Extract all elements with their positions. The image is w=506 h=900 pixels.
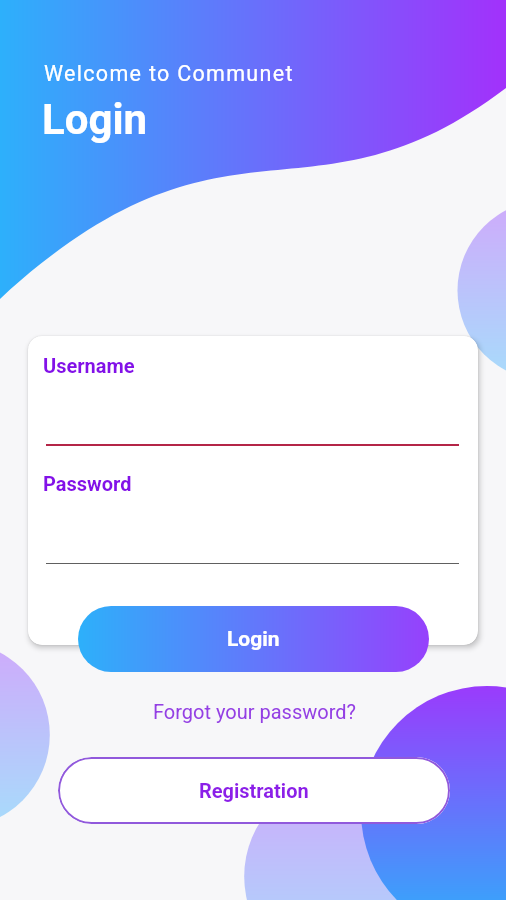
staticText: Login [42, 95, 148, 144]
button[interactable]: Registration [58, 757, 450, 824]
button[interactable]: Forgot your password? [142, 694, 366, 728]
button[interactable]: Password [36, 464, 470, 576]
staticText: Forgot your password? [153, 700, 356, 723]
staticText: Registration [199, 779, 309, 802]
button[interactable]: Login [78, 606, 429, 672]
button[interactable]: Username [36, 346, 470, 458]
staticText: Login [227, 627, 280, 652]
staticText: Username [43, 354, 135, 377]
staticText: Welcome to Communet [44, 61, 294, 86]
staticText: Password [43, 472, 132, 495]
